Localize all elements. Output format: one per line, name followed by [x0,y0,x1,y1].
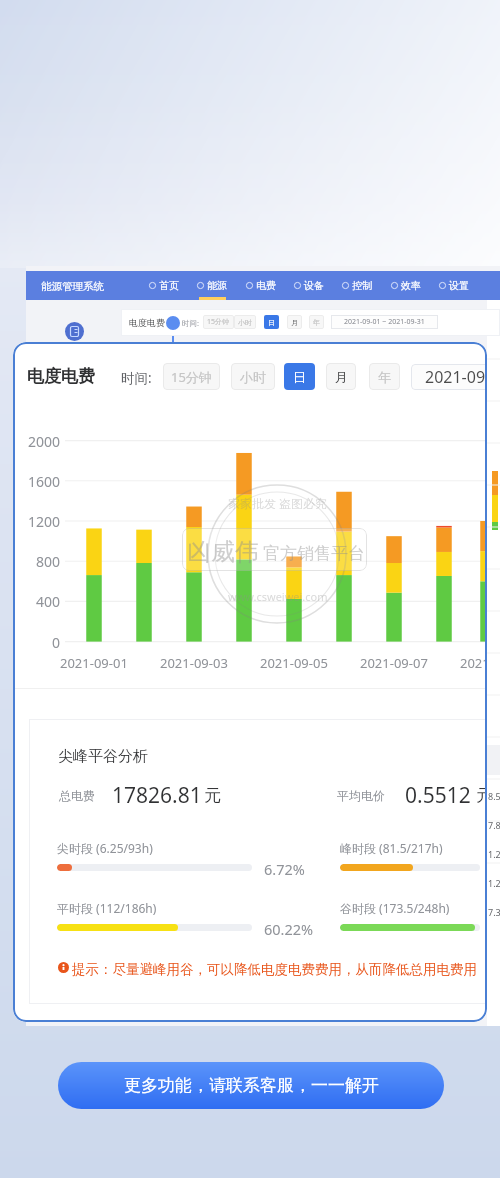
button[interactable]: 日 [264,315,279,329]
button[interactable]: 月 [287,315,302,329]
staticText: 400 [36,592,61,610]
button[interactable]: 年 [369,363,400,390]
staticText: 平均电价 [337,788,385,803]
staticText: 谷时段 (173.5/248h) [340,900,450,916]
button[interactable]: 小时 [234,315,256,329]
staticText: 设置 [449,279,469,292]
staticText: 60.22% [264,919,314,939]
staticText: 2021-09-05 [260,654,328,672]
button[interactable]: 2021-09- [411,364,487,390]
staticText: 7.87 [488,819,500,831]
staticText: 月 [335,369,348,385]
staticText: 时间: [121,369,152,387]
staticText: 1600 [28,472,61,490]
staticText: 15分钟 [207,317,230,327]
staticText: 电度电费 [27,366,95,387]
staticText: 元 [476,785,487,806]
staticText: 电度电费 [129,317,165,328]
staticText: 1200 [28,512,61,530]
staticText: 小时 [240,369,266,385]
staticText: 6.72% [264,859,305,879]
staticText: 官方销售平台 [263,543,365,564]
button[interactable]: 设备 [294,278,324,293]
staticText: 17826.81 [112,781,202,810]
staticText: 年 [378,369,391,385]
staticText: 元 [204,785,221,806]
staticText: 凶威伟 [187,537,259,567]
staticText: 能源管理系统 [41,280,104,293]
button[interactable]: 电费 [246,278,276,293]
staticText: 小时 [238,318,252,327]
button[interactable]: 更多功能，请联系客服，一一解开 [58,1062,444,1109]
staticText: 2021-09-01 ~ 2021-09-31 [344,317,425,327]
button[interactable]: 日 [284,363,315,390]
staticText: 7.39 [488,906,500,918]
staticText: 2021-09- [425,366,487,388]
staticText: 1.28 [488,848,500,860]
staticText: 0.5512 [405,781,471,810]
button[interactable]: 年 [309,315,324,329]
staticText: 2021-09-01 [60,654,128,672]
staticText: 首页 [159,279,179,292]
staticText: 2000 [28,432,61,450]
button[interactable]: 15分钟 [163,363,220,390]
staticText: 2021-09-09 [460,654,487,672]
staticText: 效率 [401,279,421,292]
staticText: 控制 [352,279,372,292]
staticText: 平时段 (112/186h) [57,900,157,916]
button[interactable]: 月 [326,363,356,390]
staticText: 尖峰平谷分析 [58,747,148,766]
staticText: 家家批发 盗图必究 [228,495,328,511]
staticText: 日 [268,318,275,327]
button[interactable]: 15分钟 [203,315,234,329]
staticText: 峰时段 (81.5/217h) [340,840,443,856]
button[interactable]: 控制 [342,278,372,293]
staticText: 提示：尽量避峰用谷，可以降低电度电费费用，从而降低总用电费用 [72,961,477,978]
staticText: 日 [293,369,306,385]
staticText: 8.59 [488,790,500,802]
staticText: 1.24 [488,877,500,889]
staticText: 更多功能，请联系客服，一一解开 [124,1075,379,1096]
staticText: 2021-09-03 [160,654,228,672]
button[interactable]: Report [65,322,84,341]
button[interactable]: 首页 [149,278,179,293]
button[interactable]: 小时 [231,363,275,390]
staticText: 800 [36,552,61,570]
staticText: 15分钟 [171,368,212,386]
staticText: 设备 [304,279,324,292]
button[interactable]: 效率 [391,278,421,293]
staticText: 电费 [256,279,276,292]
button[interactable]: 设置 [439,278,469,293]
staticText: 月 [291,318,298,327]
button[interactable]: 能源 [197,278,227,293]
staticText: 能源 [207,279,227,292]
staticText: www.csweiwei.com [228,589,328,604]
staticText: 0 [52,633,61,651]
staticText: 年 [313,318,320,327]
staticText: 时间: [182,318,200,328]
staticText: 总电费 [59,788,95,803]
staticText: 尖时段 (6.25/93h) [57,840,153,856]
staticText: 2021-09-07 [360,654,428,672]
